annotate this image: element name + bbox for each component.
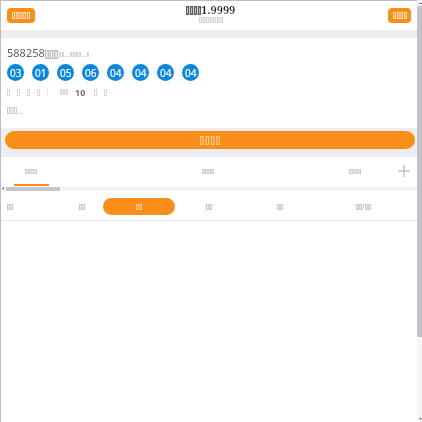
button[interactable]: /: [338, 198, 388, 215]
staticText: 10: [75, 86, 86, 98]
other: Scroll left: [2, 187, 4, 190]
staticText: ...: [64, 50, 70, 60]
button[interactable]: [0, 198, 35, 215]
button[interactable]: Add: [392, 159, 416, 183]
staticText: 1.9999: [201, 2, 236, 17]
button[interactable]: [5, 131, 415, 149]
button[interactable]: [255, 198, 305, 215]
staticText: 05: [60, 66, 72, 80]
button[interactable]: [333, 163, 377, 179]
button[interactable]: [9, 163, 53, 179]
staticText: 04: [110, 66, 122, 80]
staticText: 03: [10, 66, 22, 80]
staticText: 04: [185, 66, 197, 80]
button[interactable]: [186, 163, 230, 179]
button[interactable]: [388, 8, 411, 23]
staticText: 04: [135, 66, 147, 80]
staticText: 06: [85, 66, 97, 80]
button[interactable]: [103, 198, 175, 215]
staticText: 588258: [7, 45, 45, 60]
button[interactable]: [57, 198, 107, 215]
button[interactable]: [7, 8, 35, 23]
staticText: ...: [17, 105, 24, 116]
staticText: ...: [81, 50, 87, 60]
staticText: 04: [160, 66, 172, 80]
staticText: /: [362, 202, 365, 212]
staticText: 01: [35, 66, 47, 80]
button[interactable]: [184, 198, 234, 215]
